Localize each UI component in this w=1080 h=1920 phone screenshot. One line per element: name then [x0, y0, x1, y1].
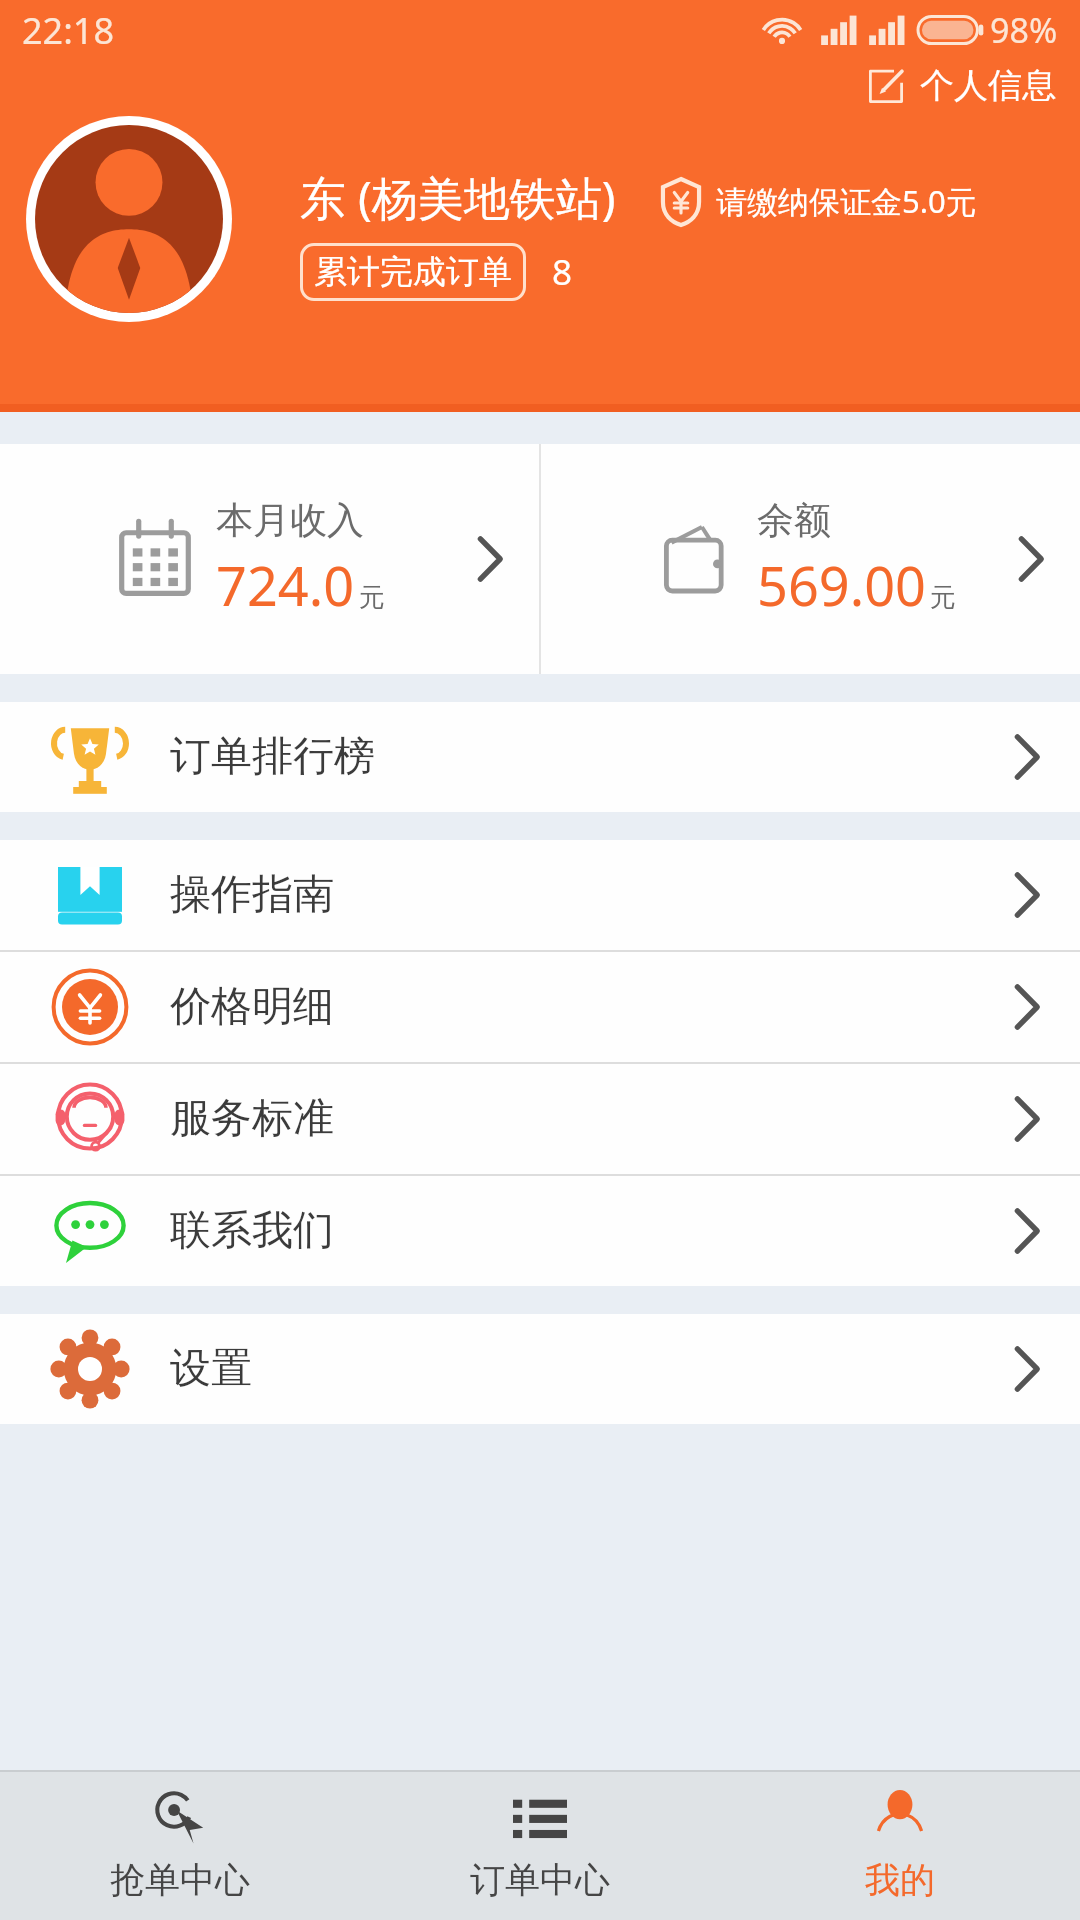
- staticText: 订单排行榜: [170, 731, 375, 783]
- button[interactable]: 个人信息: [858, 56, 1064, 115]
- staticText: 抢单中心: [110, 1858, 250, 1902]
- staticText: 订单中心: [470, 1858, 610, 1902]
- button[interactable]: 请缴纳保证金5.0元: [660, 176, 977, 226]
- button[interactable]: 操作指南: [0, 840, 1080, 950]
- button[interactable]: 余额: [541, 444, 1080, 674]
- button[interactable]: 设置: [0, 1314, 1080, 1424]
- staticText: 8: [552, 248, 573, 296]
- staticText: 东 (杨美地铁站): [300, 166, 616, 229]
- staticText: 569.00: [757, 548, 926, 622]
- staticText: 724.0: [216, 548, 355, 622]
- staticText: 联系我们: [170, 1205, 334, 1257]
- staticText: 余额: [757, 497, 831, 544]
- button[interactable]: 联系我们: [0, 1176, 1080, 1286]
- staticText: 价格明细: [170, 981, 334, 1033]
- staticText: 元: [359, 581, 385, 614]
- staticText: 服务标准: [170, 1093, 334, 1145]
- staticText: 98%: [990, 7, 1058, 53]
- button[interactable]: 本月收入: [0, 444, 539, 674]
- staticText: 元: [930, 581, 956, 614]
- button[interactable]: 我的: [720, 1772, 1080, 1920]
- button[interactable]: 订单排行榜: [0, 702, 1080, 812]
- staticText: 累计完成订单: [314, 251, 512, 293]
- staticText: 设置: [170, 1343, 252, 1395]
- button[interactable]: 抢单中心: [0, 1772, 360, 1920]
- staticText: 我的: [865, 1858, 935, 1902]
- staticText: 操作指南: [170, 869, 334, 921]
- button[interactable]: 服务标准: [0, 1064, 1080, 1174]
- staticText: 请缴纳保证金5.0元: [716, 180, 977, 222]
- staticText: 22:18: [22, 6, 115, 55]
- other: 我的: [873, 1790, 927, 1844]
- button[interactable]: 订单中心: [360, 1772, 720, 1920]
- button[interactable]: 价格明细: [0, 952, 1080, 1062]
- other: 订单中心: [513, 1790, 567, 1844]
- staticText: 个人信息: [920, 64, 1056, 107]
- button[interactable]: 头像: [35, 125, 223, 313]
- other: 抢单中心: [153, 1790, 207, 1844]
- staticText: 本月收入: [216, 497, 364, 544]
